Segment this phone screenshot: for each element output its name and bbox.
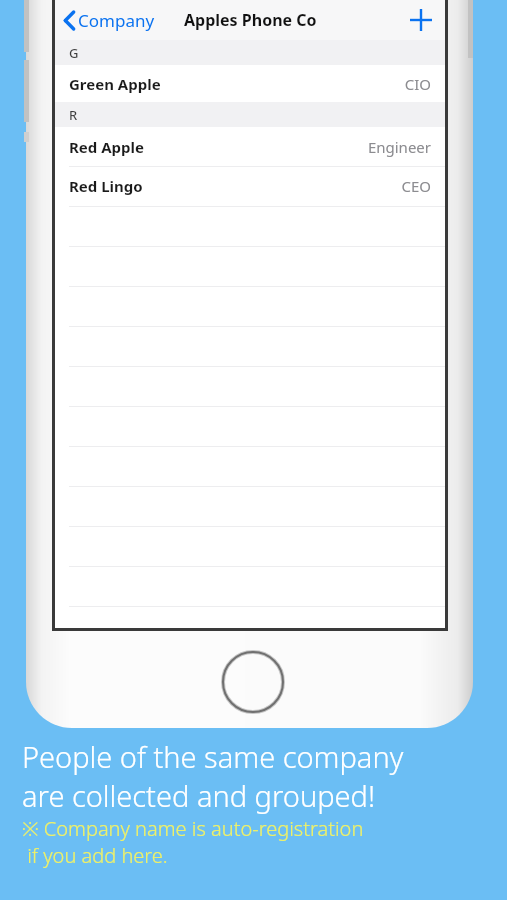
staticText: Company [78,9,155,32]
staticText: Green Apple [69,74,161,94]
button[interactable]: Company [55,4,163,37]
staticText: Red Lingo [69,176,143,196]
staticText: if you add here. [22,842,168,869]
button[interactable]: Green Apple [55,65,445,102]
staticText: People of the same company [22,737,404,776]
button[interactable]: Red Lingo [55,166,445,206]
staticText: are collected and grouped! [22,776,376,815]
staticText: Red Apple [69,137,144,157]
button[interactable]: Red Apple [55,127,445,166]
staticText: ※ Company name is auto-registration [22,815,364,842]
staticText: Engineer [367,137,431,157]
staticText: CIO [404,74,431,94]
staticText: CEO [401,176,431,196]
staticText: Apples Phone Co [184,9,317,31]
button[interactable]: Add person [397,1,445,39]
staticText: G [69,44,79,62]
staticText: R [69,106,78,124]
